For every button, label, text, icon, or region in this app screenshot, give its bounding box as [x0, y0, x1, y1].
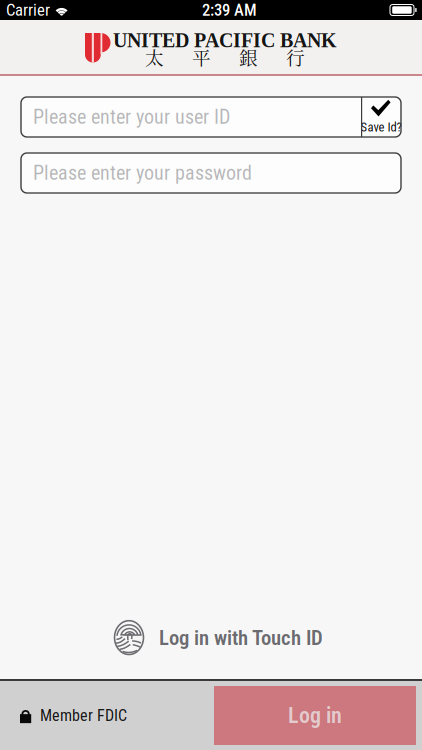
- staticText: 銀: [239, 44, 258, 70]
- staticText: 2:39 AM: [202, 0, 257, 20]
- staticText: Log in with Touch ID: [159, 626, 323, 650]
- staticText: Please enter your password: [33, 161, 252, 185]
- staticText: Please enter your user ID: [33, 105, 230, 129]
- staticText: 太: [145, 44, 164, 70]
- button[interactable]: Log in: [214, 686, 416, 745]
- button[interactable]: Log in with Touch ID: [99, 613, 323, 663]
- staticText: Log in: [288, 703, 342, 728]
- staticText: Carrier: [6, 0, 50, 20]
- staticText: Save Id?: [360, 120, 401, 134]
- staticText: 平: [192, 44, 211, 70]
- staticText: UNITED PACIFIC BANK: [113, 29, 337, 51]
- button[interactable]: Save Id?: [361, 97, 401, 137]
- staticText: Member FDIC: [40, 706, 127, 725]
- staticText: 行: [286, 44, 305, 70]
